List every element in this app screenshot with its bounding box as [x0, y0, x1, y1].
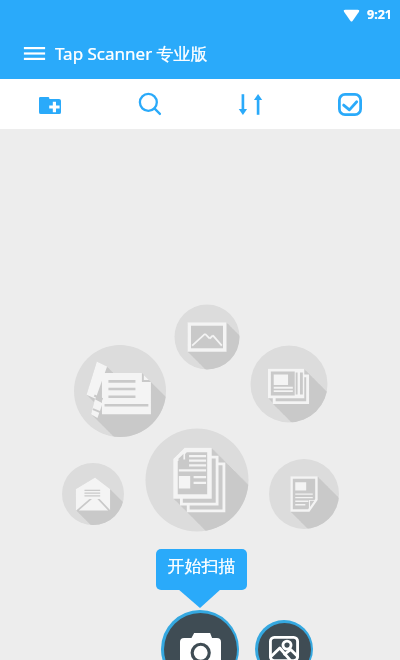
button[interactable]: New folder: [0, 79, 100, 129]
button[interactable]: Menu: [16, 35, 53, 72]
staticText: 开始扫描: [156, 556, 247, 577]
button[interactable]: Search: [100, 79, 200, 129]
staticText: 9:21: [367, 6, 392, 23]
staticText: Tap Scanner 专业版: [55, 42, 208, 65]
button[interactable]: Select all: [300, 79, 400, 129]
button[interactable]: Import from gallery: [255, 620, 313, 660]
button[interactable]: Sort: [200, 79, 300, 129]
button[interactable]: Scan with camera: [161, 610, 239, 660]
